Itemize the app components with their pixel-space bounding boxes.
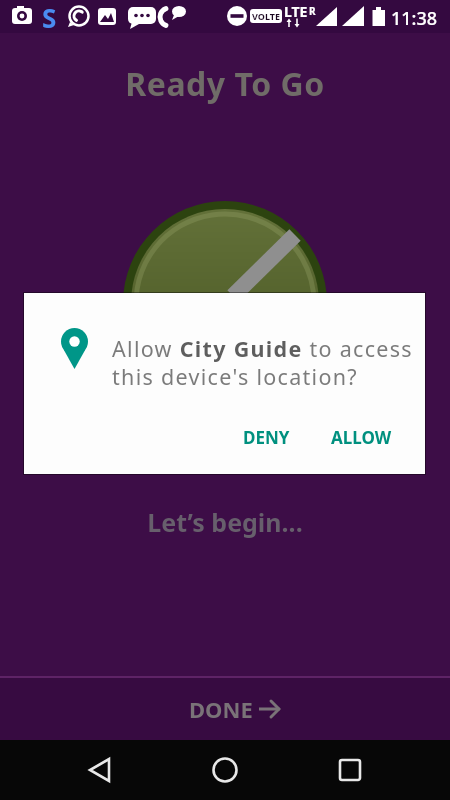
staticText: DENY xyxy=(243,426,290,449)
staticText: R xyxy=(309,4,316,18)
button[interactable]: ALLOW xyxy=(318,415,404,459)
staticText: VOLTE xyxy=(252,10,280,22)
staticText: Let’s begin... xyxy=(0,505,450,539)
button[interactable] xyxy=(75,745,125,795)
staticText: Allow City Guide to access this device's… xyxy=(112,334,442,392)
staticText: S xyxy=(42,0,57,33)
button[interactable] xyxy=(200,745,250,795)
button[interactable]: DENY xyxy=(228,415,304,459)
button[interactable]: DONE xyxy=(0,678,450,740)
staticText: DONE xyxy=(189,694,253,724)
staticText: 11:38 xyxy=(391,6,438,31)
button[interactable] xyxy=(325,745,375,795)
staticText: LTE xyxy=(284,2,308,21)
staticText: Ready To Go xyxy=(0,62,450,106)
staticText: ALLOW xyxy=(331,426,392,449)
